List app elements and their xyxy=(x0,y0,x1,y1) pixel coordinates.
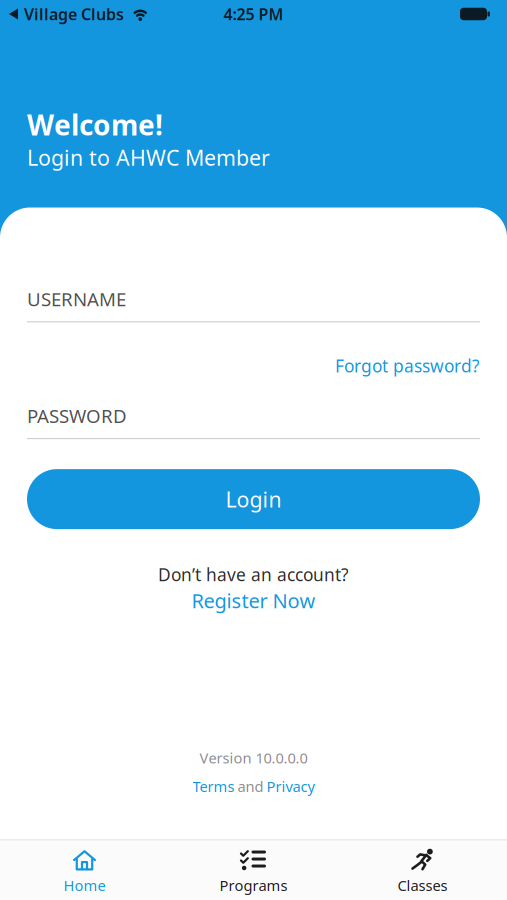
staticText: Forgot password? xyxy=(335,354,480,377)
staticText: Home xyxy=(63,875,105,895)
staticText: 4:25 PM xyxy=(223,3,283,25)
button[interactable]: Terms xyxy=(192,776,234,796)
button[interactable]: Register Now xyxy=(191,587,315,614)
staticText: Classes xyxy=(397,875,447,895)
staticText: Programs xyxy=(219,875,287,895)
staticText: Don’t have an account? xyxy=(158,563,349,586)
staticText: Village Clubs xyxy=(24,3,124,25)
staticText: Version 10.0.0.0 xyxy=(199,748,307,767)
button[interactable]: Forgot password? xyxy=(335,354,480,377)
staticText: Privacy xyxy=(266,776,314,796)
staticText: USERNAME xyxy=(27,286,126,311)
button[interactable]: Privacy xyxy=(266,776,314,796)
button[interactable]: Home xyxy=(0,847,169,895)
button[interactable]: Classes xyxy=(338,847,507,895)
staticText: PASSWORD xyxy=(27,403,127,428)
staticText: Login to AHWC Member xyxy=(27,143,270,171)
button[interactable]: Login xyxy=(27,469,480,529)
staticText: Welcome! xyxy=(27,106,163,143)
staticText: Register Now xyxy=(191,587,315,614)
staticText: Terms xyxy=(192,776,234,796)
staticText: and xyxy=(237,776,263,796)
staticText: Login xyxy=(225,485,281,513)
button[interactable]: Programs xyxy=(169,847,338,895)
